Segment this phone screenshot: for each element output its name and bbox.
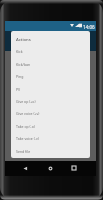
staticText: Kick/ban bbox=[16, 62, 31, 67]
button[interactable]: Send file bbox=[11, 145, 90, 157]
staticText: Ping bbox=[16, 74, 24, 79]
button[interactable]: Recent apps bbox=[67, 161, 81, 175]
staticText: PV bbox=[16, 87, 21, 92]
staticText: Take op (-o) bbox=[16, 124, 35, 129]
button[interactable]: Give op (+o) bbox=[11, 95, 90, 107]
button[interactable]: Ping bbox=[11, 70, 90, 82]
staticText: 14:06 bbox=[83, 24, 95, 30]
button[interactable]: Home bbox=[43, 161, 57, 175]
staticText: Take voice (-v) bbox=[16, 136, 39, 141]
button[interactable]: Kick bbox=[11, 45, 90, 57]
button[interactable]: Kick/ban bbox=[11, 58, 90, 70]
button[interactable]: Back bbox=[18, 161, 32, 175]
staticText: Give op (+o) bbox=[16, 99, 36, 104]
button[interactable]: PV bbox=[11, 83, 90, 95]
staticText: Give voice (+v) bbox=[16, 111, 40, 116]
button[interactable]: Give voice (+v) bbox=[11, 107, 90, 119]
staticText: Actions bbox=[16, 37, 31, 43]
button[interactable]: Take op (-o) bbox=[11, 120, 90, 132]
staticText: Send file bbox=[16, 149, 31, 154]
staticText: Kick bbox=[16, 49, 23, 54]
button[interactable]: Take voice (-v) bbox=[11, 132, 90, 144]
